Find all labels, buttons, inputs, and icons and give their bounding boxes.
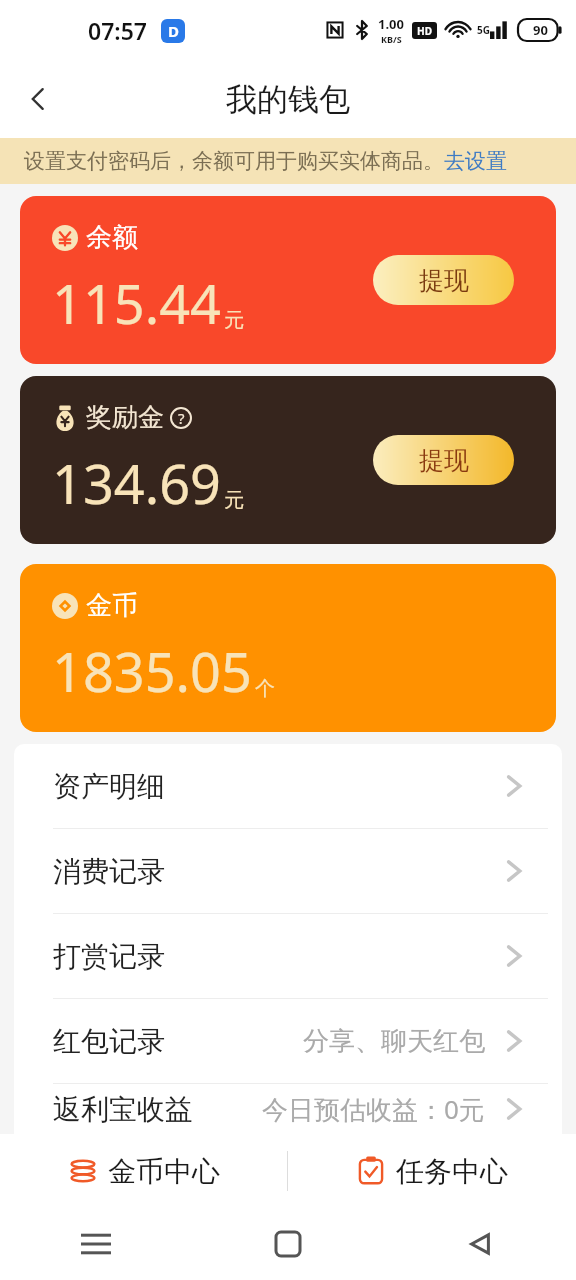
button[interactable]: 提现 <box>373 255 514 305</box>
button[interactable]: 余额 <box>20 196 556 364</box>
button[interactable]: Back <box>384 1208 576 1280</box>
staticText: 90 <box>533 21 548 39</box>
staticText: 红包记录 <box>53 1024 165 1059</box>
staticText: 余额 <box>86 221 138 254</box>
button[interactable]: 设置支付密码后，余额可用于购买实体商品。 <box>0 138 576 184</box>
button[interactable]: 金币中心 <box>0 1134 287 1208</box>
staticText: 元 <box>224 308 244 333</box>
staticText: D <box>168 21 179 41</box>
button[interactable]: 奖励金 <box>20 376 556 544</box>
button[interactable]: Recents <box>0 1208 192 1280</box>
staticText: ? <box>178 408 185 428</box>
staticText: 资产明细 <box>53 769 165 804</box>
staticText: HD <box>417 24 432 38</box>
staticText: 返利宝收益 <box>53 1092 193 1127</box>
staticText: 1835.05 <box>52 634 252 708</box>
button[interactable]: 提现 <box>373 435 514 485</box>
staticText: 115.44 <box>52 266 221 340</box>
staticText: 金币中心 <box>108 1154 220 1189</box>
staticText: 分享、聊天红包 <box>303 1025 485 1058</box>
staticText: 设置支付密码后，余额可用于购买实体商品。 <box>24 148 444 174</box>
staticText: 我的钱包 <box>226 80 350 119</box>
staticText: 134.69 <box>52 446 221 520</box>
staticText: 今日预估收益：0元 <box>262 1091 485 1127</box>
staticText: 消费记录 <box>53 854 165 889</box>
staticText: 5G <box>477 23 490 37</box>
staticText: 提现 <box>419 445 469 476</box>
staticText: 去设置 <box>444 148 507 174</box>
staticText: 元 <box>224 488 244 513</box>
staticText: 1.00 <box>378 15 404 33</box>
staticText: 打赏记录 <box>53 939 165 974</box>
button[interactable]: 资产明细 <box>14 744 562 828</box>
staticText: 个 <box>255 676 275 701</box>
staticText: 奖励金 <box>86 401 164 434</box>
staticText: 金币 <box>86 589 138 622</box>
button[interactable]: 红包记录 <box>14 999 562 1083</box>
button[interactable]: 返利宝收益 <box>14 1084 562 1134</box>
button[interactable]: 打赏记录 <box>14 914 562 998</box>
staticText: 提现 <box>419 265 469 296</box>
staticText: 07:57 <box>88 15 147 46</box>
button[interactable]: Help <box>169 406 193 430</box>
button[interactable]: Back <box>10 71 66 127</box>
button[interactable]: Home <box>192 1208 384 1280</box>
button[interactable]: 金币 <box>20 564 556 732</box>
staticText: KB/S <box>381 33 402 45</box>
button[interactable]: 任务中心 <box>288 1134 576 1208</box>
staticText: 任务中心 <box>396 1154 508 1189</box>
button[interactable]: 消费记录 <box>14 829 562 913</box>
